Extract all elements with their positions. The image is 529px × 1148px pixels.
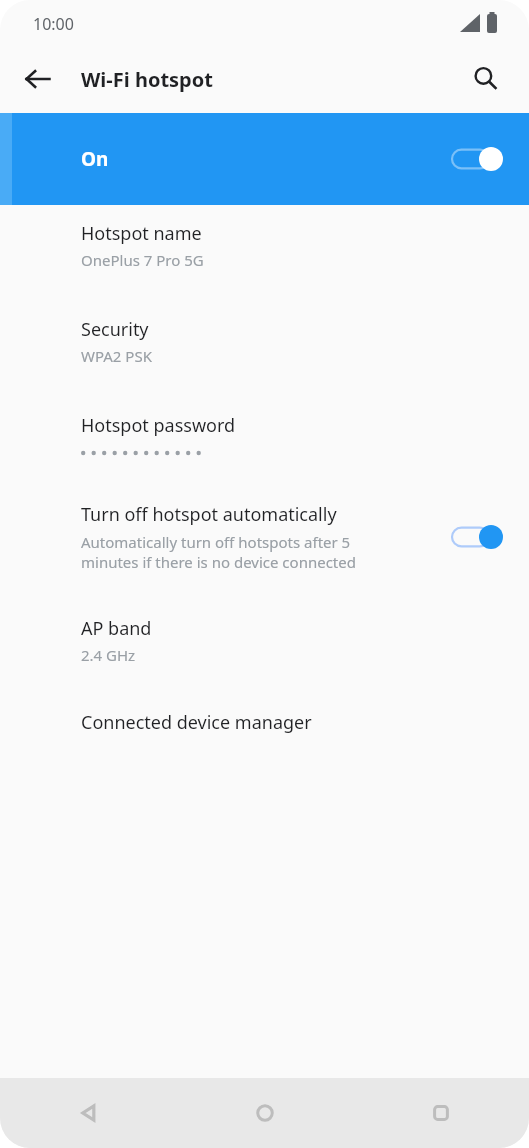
button[interactable]: Search xyxy=(462,55,510,103)
staticText: 2.4 GHz xyxy=(81,645,136,665)
button[interactable]: AP band xyxy=(0,616,529,665)
staticText: On xyxy=(81,146,109,172)
staticText: Turn off hotspot automatically xyxy=(81,502,337,527)
staticText: Automatically turn off hotspots after 5 … xyxy=(81,532,356,572)
staticText: Security xyxy=(81,317,149,342)
button[interactable]: On xyxy=(12,113,529,205)
button[interactable]: Connected device manager xyxy=(0,710,529,735)
staticText: AP band xyxy=(81,616,152,641)
button[interactable]: Recent apps xyxy=(353,1078,529,1148)
button[interactable]: Hotspot password xyxy=(0,413,529,458)
staticText: Connected device manager xyxy=(81,710,312,735)
staticText: WPA2 PSK xyxy=(81,346,152,366)
button[interactable]: Turn off hotspot automatically xyxy=(0,502,529,572)
button[interactable]: Back xyxy=(0,1078,177,1148)
staticText: OnePlus 7 Pro 5G xyxy=(81,250,204,270)
button[interactable]: Back xyxy=(14,55,62,103)
staticText: Wi-Fi hotspot xyxy=(81,66,213,93)
button[interactable]: Security xyxy=(0,317,529,366)
button[interactable]: Toggle xyxy=(452,522,504,552)
button[interactable]: Toggle xyxy=(452,144,504,174)
button[interactable]: Home xyxy=(177,1078,353,1148)
button[interactable]: Hotspot name xyxy=(0,221,529,270)
staticText: Hotspot name xyxy=(81,221,202,246)
staticText: 10:00 xyxy=(33,13,74,35)
staticText: Hotspot password xyxy=(81,413,236,438)
